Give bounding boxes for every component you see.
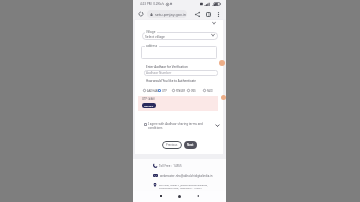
staticText: 4:23 PM 0.2Kb/s	[140, 2, 165, 6]
button[interactable]: FINGER	[172, 88, 186, 93]
staticText: Next	[187, 143, 194, 147]
button[interactable]: Recent apps	[158, 193, 164, 199]
button[interactable]: Help	[219, 60, 225, 66]
staticText: Get OTP	[144, 104, 154, 107]
button[interactable]: 9th Floor, Tower-L, Jeevan Bharati Build…	[153, 183, 210, 190]
button[interactable]: Reload	[137, 10, 145, 18]
button[interactable]: Toll Free : 14555	[153, 163, 182, 168]
button[interactable]: I agree with Aadhaar sharing terms and c…	[142, 121, 222, 131]
staticText: setu.pmjay.gov.in	[155, 12, 187, 17]
staticText: Previous	[166, 143, 178, 147]
staticText: webmaster-nha@abha.bhidigitalindia.in	[160, 174, 213, 178]
button[interactable]: Share	[193, 10, 201, 18]
staticText: Village	[146, 30, 156, 34]
button[interactable]: Home	[176, 193, 182, 199]
staticText: Enter Aadhaar for Verification	[146, 65, 188, 69]
button[interactable]: webmaster-nha@abha.bhidigitalindia.in	[153, 173, 213, 178]
staticText: address	[146, 44, 158, 48]
staticText: OTP (###)	[142, 97, 155, 101]
button[interactable]: Tabs	[204, 10, 212, 18]
staticText: FINGER	[176, 89, 186, 93]
button[interactable]: Back	[195, 193, 201, 199]
staticText: 9th Floor, Tower-L, Jeevan Bharati Build…	[159, 183, 210, 190]
button[interactable]: More options	[214, 10, 222, 18]
staticText: IRIS	[191, 89, 196, 93]
button[interactable]: Next	[184, 141, 197, 149]
staticText: Toll Free : 14555	[159, 164, 182, 168]
staticText: OTP	[162, 89, 167, 93]
button[interactable]: Chat	[221, 95, 226, 100]
button[interactable]: OTP	[158, 88, 167, 93]
staticText: 0	[208, 13, 210, 17]
button[interactable]: AADHAAR	[143, 88, 160, 93]
staticText: Select village	[145, 34, 165, 38]
button[interactable]: setu.pmjay.gov.in	[147, 10, 187, 18]
button[interactable]: IRIS	[187, 88, 196, 93]
button[interactable]: Get OTP	[142, 103, 156, 108]
button[interactable]: FACE	[203, 88, 213, 93]
staticText: How would You like to Authenticate	[146, 79, 196, 83]
button[interactable]: Previous	[162, 141, 182, 149]
staticText: FACE	[207, 89, 213, 93]
staticText: Aadhaar Number	[146, 71, 172, 75]
button[interactable]: Collapse section	[211, 20, 216, 25]
staticText: I agree with Aadhaar sharing terms and c…	[148, 122, 204, 130]
staticText: AADHAAR	[147, 89, 160, 93]
